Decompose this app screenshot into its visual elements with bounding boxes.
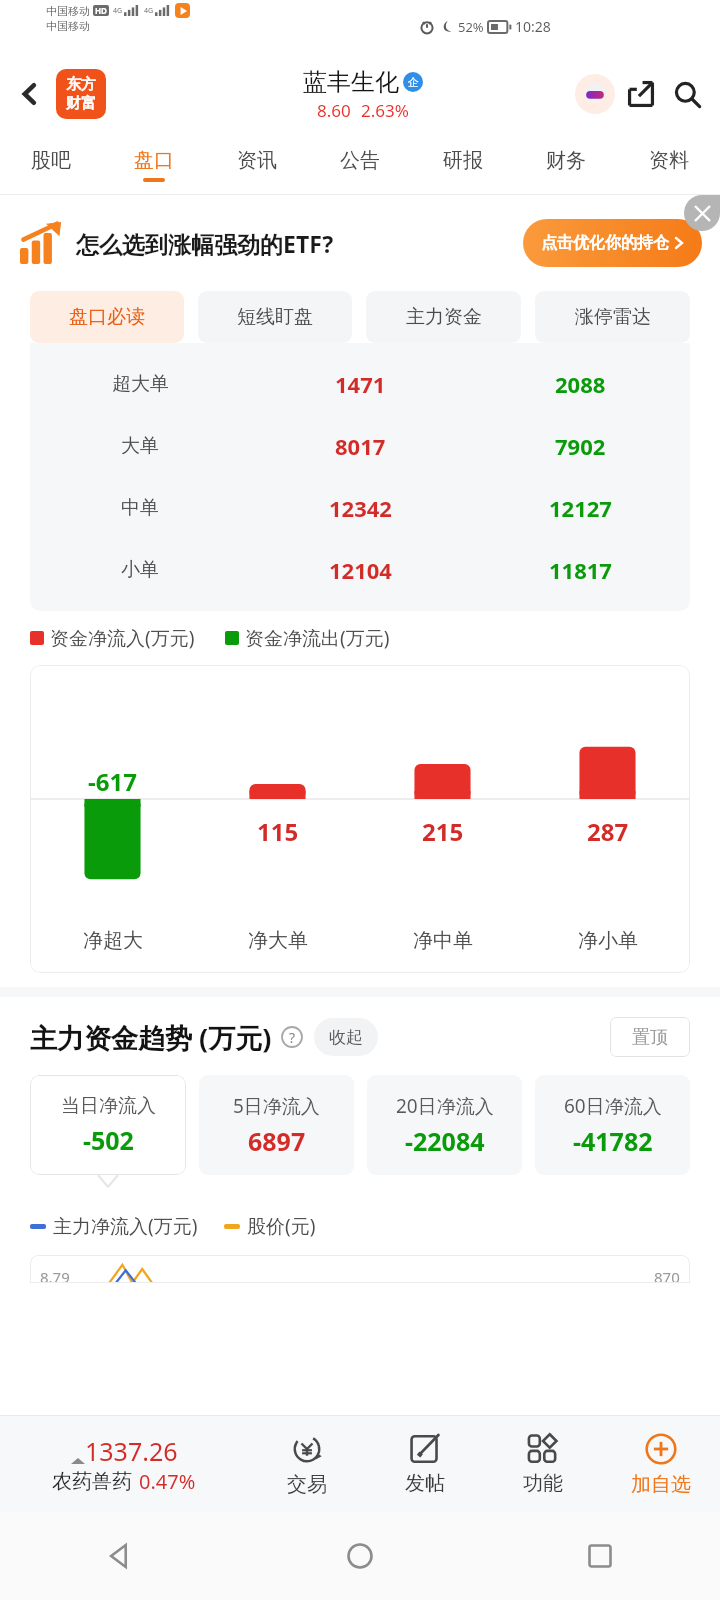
button[interactable]: 发帖	[366, 1416, 484, 1512]
staticText: 12104	[329, 555, 392, 585]
button[interactable]: AI 助手	[572, 71, 618, 117]
staticText: 主力净流入(万元)	[53, 1213, 198, 1239]
button[interactable]: Back	[6, 70, 54, 118]
staticText: 5日净流入	[233, 1093, 320, 1119]
staticText: 加自选	[631, 1472, 691, 1497]
button[interactable]: 股吧	[0, 136, 102, 194]
staticText: 52%	[458, 18, 484, 36]
staticText: 净大单	[248, 928, 308, 953]
button[interactable]: 研报	[411, 136, 514, 194]
staticText: 8.60	[317, 99, 351, 122]
staticText: 资料	[649, 148, 689, 173]
button[interactable]: 加自选	[602, 1416, 720, 1512]
staticText: 公告	[340, 148, 380, 173]
staticText: 研报	[443, 148, 483, 173]
staticText: 财务	[546, 148, 586, 173]
staticText: 净超大	[83, 928, 143, 953]
staticText: 小单	[121, 558, 159, 582]
staticText: 功能	[523, 1471, 563, 1496]
staticText: -41782	[573, 1124, 653, 1158]
staticText: 0.47%	[139, 1468, 196, 1495]
button[interactable]: Share	[618, 71, 664, 117]
staticText: 点击优化你的持仓	[541, 233, 669, 253]
button[interactable]: 1337.26	[0, 1434, 248, 1495]
staticText: 收起	[329, 1027, 363, 1048]
staticText: 盘口	[134, 148, 174, 173]
button[interactable]: 点击优化你的持仓	[523, 219, 702, 267]
staticText: 12127	[549, 493, 612, 523]
button[interactable]: 短线盯盘	[198, 291, 352, 343]
staticText: -22084	[405, 1124, 485, 1158]
staticText: 净中单	[413, 928, 473, 953]
staticText: 215	[422, 815, 464, 848]
staticText: 10:28	[515, 17, 551, 36]
button[interactable]: 主力资金	[366, 291, 521, 343]
staticText: 主力资金	[406, 305, 482, 329]
button[interactable]: 20日净流入	[367, 1075, 522, 1175]
staticText: ?	[289, 1028, 296, 1047]
button[interactable]: Close	[684, 195, 720, 231]
button[interactable]: 盘口必读	[30, 291, 184, 343]
staticText: 交易	[287, 1472, 327, 1497]
staticText: 8017	[335, 431, 386, 461]
button[interactable]: 置顶	[610, 1017, 690, 1057]
button[interactable]: 资讯	[205, 136, 308, 194]
staticText: 主力资金趋势 (万元)	[30, 1019, 272, 1056]
staticText: 1337.26	[85, 1434, 178, 1468]
staticText: 超大单	[112, 372, 169, 396]
staticText: 6897	[248, 1124, 306, 1158]
staticText: 短线盯盘	[237, 305, 313, 329]
button[interactable]: Recents	[570, 1526, 630, 1586]
staticText: 企	[408, 75, 419, 89]
staticText: 8.79	[40, 1267, 70, 1283]
staticText: 涨停雷达	[575, 305, 651, 329]
staticText: 股价(元)	[247, 1213, 316, 1239]
staticText: 287	[587, 815, 629, 848]
button[interactable]: Home	[330, 1526, 390, 1586]
button[interactable]: 当日净流入	[30, 1075, 186, 1175]
staticText: 4G	[113, 6, 123, 16]
button[interactable]: 财务	[514, 136, 617, 194]
staticText: 870	[654, 1267, 680, 1283]
staticText: 农药兽药	[52, 1469, 132, 1494]
button[interactable]: 收起	[314, 1018, 378, 1056]
button[interactable]: 功能	[484, 1416, 602, 1512]
staticText: 11817	[549, 555, 612, 585]
button[interactable]: 60日净流入	[535, 1075, 690, 1175]
staticText: 当日净流入	[61, 1094, 156, 1118]
staticText: 东方	[66, 75, 96, 94]
button[interactable]: Back	[90, 1526, 150, 1586]
staticText: 大单	[121, 434, 159, 458]
staticText: 12342	[329, 493, 392, 523]
staticText: 置顶	[632, 1026, 668, 1049]
staticText: HD	[95, 5, 107, 16]
staticText: -617	[88, 765, 137, 798]
staticText: 60日净流入	[564, 1093, 662, 1119]
button[interactable]: 5日净流入	[199, 1075, 354, 1175]
staticText: 中国移动	[46, 19, 90, 33]
staticText: 资金净流入(万元)	[50, 625, 195, 651]
staticText: 发帖	[405, 1471, 445, 1496]
staticText: 115	[257, 815, 299, 848]
button[interactable]: 交易	[248, 1416, 366, 1512]
button[interactable]: 盘口	[102, 136, 205, 194]
staticText: 股吧	[31, 148, 71, 173]
button[interactable]: Help	[280, 1025, 304, 1049]
staticText: 资讯	[237, 148, 277, 173]
staticText: 2088	[555, 369, 606, 399]
staticText: 中国移动	[46, 4, 90, 18]
staticText: 4G	[144, 6, 154, 16]
staticText: 资金净流出(万元)	[245, 625, 390, 651]
staticText: -502	[83, 1123, 134, 1157]
staticText: 1471	[335, 369, 386, 399]
button[interactable]: 东方财富	[56, 69, 106, 119]
staticText: 财富	[66, 94, 96, 113]
staticText: 20日净流入	[396, 1093, 494, 1119]
button[interactable]: Search	[664, 71, 710, 117]
button[interactable]: 资料	[617, 136, 720, 194]
staticText: 盘口必读	[69, 305, 145, 329]
staticText: 蓝丰生化	[303, 67, 399, 97]
button[interactable]: 公告	[308, 136, 411, 194]
button[interactable]: 涨停雷达	[535, 291, 690, 343]
staticText: 7902	[555, 431, 606, 461]
